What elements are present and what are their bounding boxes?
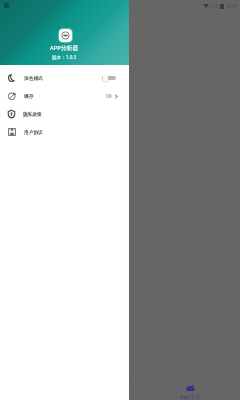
staticText: 用户协议 <box>24 129 43 135</box>
staticText: APP分析器 <box>50 44 79 52</box>
staticText: 缓存 <box>24 93 34 99</box>
button[interactable]: Apk文件 <box>160 380 220 400</box>
staticText: 版本：1.0.3 <box>52 54 77 60</box>
staticText: 深色模式 <box>24 75 43 81</box>
staticText: 8:39 <box>227 2 238 9</box>
button[interactable]: 用户协议 <box>0 123 129 141</box>
staticText: 隐私政策 <box>23 111 42 117</box>
button[interactable]: 缓存 <box>0 87 129 105</box>
button[interactable]: 深色模式 <box>0 69 129 87</box>
staticText: Apk文件 <box>180 393 201 400</box>
button[interactable]: Dark mode toggle <box>102 74 116 82</box>
staticText: 0K <box>106 93 112 100</box>
button[interactable]: 隐私政策 <box>0 105 129 123</box>
